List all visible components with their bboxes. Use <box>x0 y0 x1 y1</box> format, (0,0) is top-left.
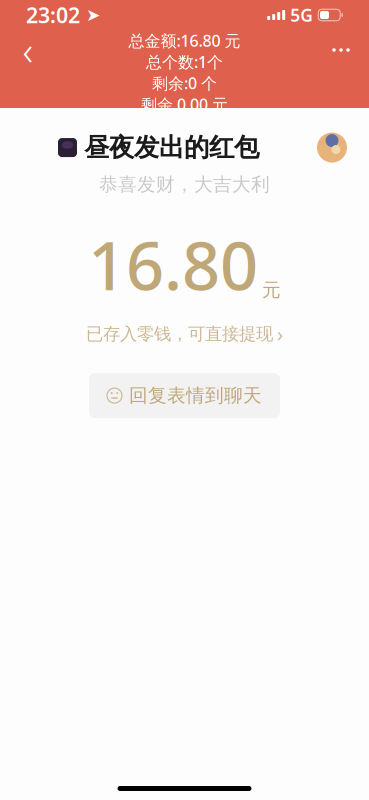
staticText: 总金额:16.80 元 <box>128 30 240 51</box>
staticText: 恭喜发财，大吉大利 <box>99 173 270 196</box>
staticText: 元 <box>262 279 281 301</box>
staticText: › <box>277 321 283 347</box>
staticText: ‹ <box>22 23 33 76</box>
staticText: 回复表情到聊天 <box>129 384 262 407</box>
staticText: 昼夜发出的红包 <box>84 132 259 163</box>
button[interactable]: 回复表情到聊天 <box>89 373 280 418</box>
staticText: 16.80 <box>88 220 258 308</box>
button[interactable]: More <box>321 30 361 70</box>
staticText: 23:02 <box>26 1 80 29</box>
staticText: 已存入零钱，可直接提现 <box>86 323 273 344</box>
button[interactable]: 已存入零钱，可直接提现 <box>80 317 289 351</box>
staticText: ➤ <box>80 5 101 25</box>
staticText: 5G <box>290 3 313 26</box>
staticText: 总个数:1个 <box>146 51 223 72</box>
button[interactable]: Sender avatar <box>317 133 347 163</box>
staticText: 剩余:0 个 <box>152 72 217 94</box>
staticText: 剩余 0.00 元 <box>141 94 228 115</box>
button[interactable]: Back <box>8 30 48 70</box>
